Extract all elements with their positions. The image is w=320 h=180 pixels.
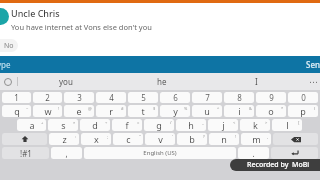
button[interactable]: b: [177, 133, 207, 145]
staticText: e: [76, 105, 82, 117]
staticText: Send: [306, 59, 320, 70]
button[interactable]: !#1: [2, 147, 49, 159]
staticText: you: [59, 76, 73, 87]
button[interactable]: 7: [192, 92, 222, 103]
button[interactable]: he: [114, 73, 209, 90]
staticText: q: [14, 105, 20, 117]
staticText: g: [156, 119, 162, 131]
button[interactable]: Shift: [2, 133, 47, 145]
staticText: h: [188, 119, 194, 131]
button[interactable]: 5: [128, 92, 158, 103]
button[interactable]: a: [17, 119, 46, 131]
button[interactable]: 1: [2, 92, 31, 103]
staticText: ,: [65, 148, 68, 159]
button[interactable]: p: [288, 105, 318, 117]
staticText: he: [157, 76, 167, 87]
staticText: y: [173, 105, 178, 117]
staticText: n: [221, 133, 227, 145]
button[interactable]: v: [145, 133, 175, 145]
button[interactable]: c: [113, 133, 143, 145]
staticText: 3: [77, 92, 82, 103]
button[interactable]: Send: [297, 57, 320, 72]
button[interactable]: j: [208, 119, 238, 131]
staticText: #: [121, 106, 124, 111]
staticText: ^: [217, 106, 220, 111]
button[interactable]: I: [209, 73, 304, 90]
staticText: _: [202, 120, 204, 125]
button[interactable]: 4: [96, 92, 126, 103]
button[interactable]: g: [144, 119, 174, 131]
staticText: .: [252, 148, 255, 159]
staticText: ': [172, 134, 173, 139]
staticText: o: [268, 105, 274, 117]
button[interactable]: x: [81, 133, 111, 145]
staticText: +: [41, 120, 44, 125]
button[interactable]: More suggestions: [306, 75, 320, 89]
button[interactable]: n: [209, 133, 239, 145]
staticText: ÷: [105, 120, 108, 125]
button[interactable]: r: [96, 105, 126, 117]
staticText: u: [204, 105, 210, 117]
button[interactable]: Backspace: [273, 133, 318, 145]
staticText: !: [235, 134, 237, 139]
staticText: w: [44, 105, 52, 117]
button[interactable]: s: [48, 119, 78, 131]
staticText: :: [75, 134, 77, 139]
staticText: @: [88, 106, 92, 111]
button[interactable]: m: [241, 133, 271, 145]
staticText: p: [300, 105, 306, 117]
button[interactable]: e: [64, 105, 94, 117]
button[interactable]: Enter: [271, 147, 318, 159]
button[interactable]: i: [224, 105, 254, 117]
button[interactable]: 6: [160, 92, 190, 103]
button[interactable]: w: [33, 105, 62, 117]
staticText: t: [141, 105, 145, 117]
staticText: v: [158, 133, 163, 145]
button[interactable]: u: [192, 105, 222, 117]
button[interactable]: No: [0, 39, 18, 52]
staticText: ": [139, 134, 141, 139]
button[interactable]: 0: [288, 92, 318, 103]
staticText: k: [253, 119, 258, 131]
staticText: i: [238, 105, 241, 117]
staticText: ,: [267, 134, 269, 139]
staticText: Recorded by MoBi: [247, 160, 310, 170]
button[interactable]: k: [240, 119, 270, 131]
staticText: m: [252, 133, 261, 145]
button[interactable]: z: [49, 133, 79, 145]
staticText: %: [184, 106, 188, 111]
staticText: j: [222, 119, 225, 131]
staticText: [: [298, 120, 300, 125]
button[interactable]: y: [160, 105, 190, 117]
staticText: ⋯: [309, 77, 318, 87]
button[interactable]: o: [256, 105, 286, 117]
staticText: l: [286, 119, 289, 131]
staticText: *: [281, 106, 284, 111]
button[interactable]: Emoji: [1, 75, 15, 89]
staticText: &: [249, 106, 252, 111]
staticText: 8: [237, 92, 242, 103]
button[interactable]: d: [80, 119, 110, 131]
button[interactable]: you: [18, 73, 114, 90]
staticText: !: [58, 106, 60, 111]
button[interactable]: q: [2, 105, 31, 117]
button[interactable]: h: [176, 119, 206, 131]
staticText: You have internet at Vons else don't you: [11, 22, 152, 32]
staticText: ?: [203, 134, 205, 139]
staticText: 7: [205, 92, 210, 103]
button[interactable]: 8: [224, 92, 254, 103]
button[interactable]: English (US): [84, 147, 236, 159]
button[interactable]: 2: [33, 92, 62, 103]
staticText: 0: [301, 92, 306, 103]
staticText: /: [170, 120, 172, 125]
button[interactable]: ,: [51, 147, 82, 159]
button[interactable]: f: [112, 119, 142, 131]
button[interactable]: l: [272, 119, 302, 131]
staticText: 6: [173, 92, 178, 103]
button[interactable]: t: [128, 105, 158, 117]
staticText: f: [125, 119, 129, 131]
button[interactable]: 3: [64, 92, 94, 103]
button[interactable]: .: [238, 147, 269, 159]
staticText: z: [62, 133, 67, 145]
button[interactable]: 9: [256, 92, 286, 103]
